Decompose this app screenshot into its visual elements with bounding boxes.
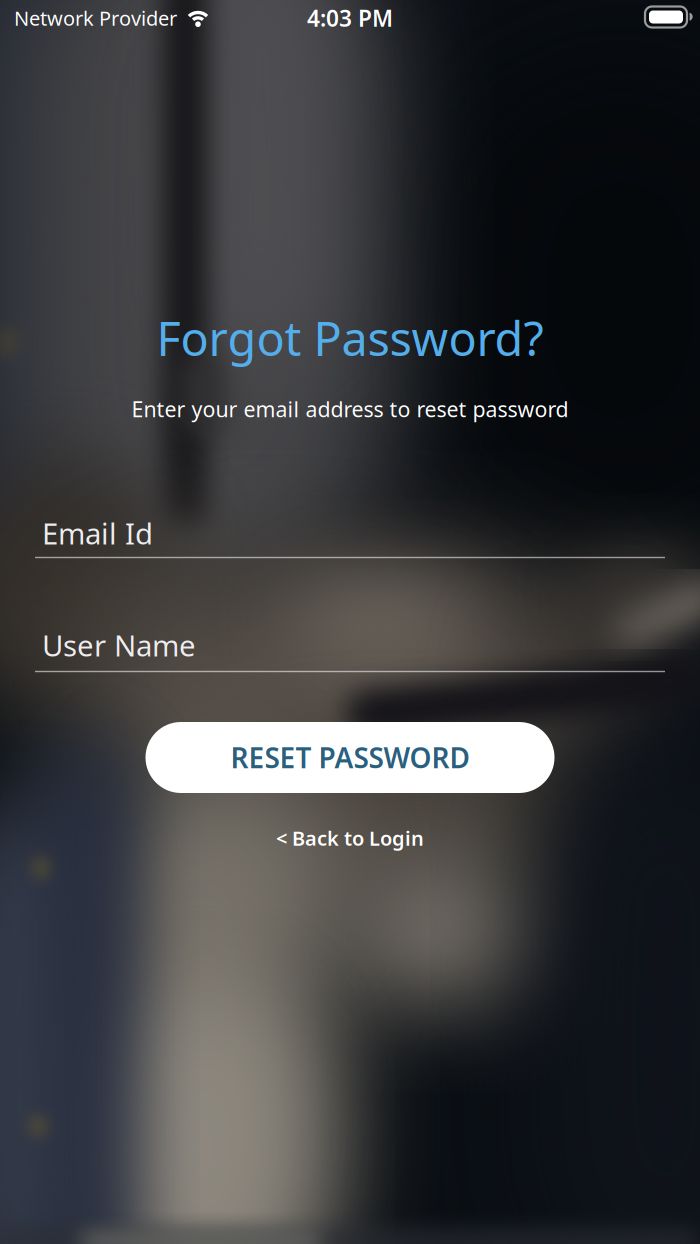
button[interactable]: User Name — [20, 609, 680, 693]
staticText: < Back to Login — [276, 825, 424, 851]
staticText: User Name — [42, 625, 196, 664]
staticText: 4:03 PM — [307, 3, 393, 33]
staticText: RESET PASSWORD — [230, 739, 469, 776]
button[interactable]: RESET PASSWORD — [145, 722, 554, 793]
button[interactable]: Email Id — [20, 497, 680, 581]
staticText: Network Provider — [14, 5, 177, 31]
staticText: Enter your email address to reset passwo… — [131, 395, 568, 423]
button[interactable]: < Back to Login — [230, 816, 470, 860]
staticText: Email Id — [42, 513, 153, 552]
staticText: Forgot Password? — [156, 307, 543, 369]
